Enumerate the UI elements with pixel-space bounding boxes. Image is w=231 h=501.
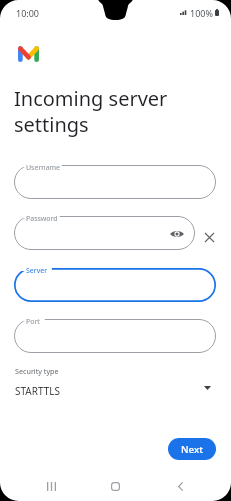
button[interactable]: Recent apps — [41, 476, 62, 497]
staticText: 100% — [190, 7, 213, 19]
button[interactable]: Clear text — [201, 229, 217, 245]
button[interactable]: Server — [14, 268, 216, 302]
staticText: 10:00 — [16, 7, 40, 19]
staticText: Server — [26, 266, 48, 276]
button[interactable]: Security type — [0, 362, 231, 402]
button[interactable]: Home — [105, 476, 126, 497]
button[interactable]: Username — [14, 165, 216, 199]
staticText: Username — [26, 163, 61, 173]
staticText: Incoming server settings — [14, 85, 168, 138]
staticText: Next — [181, 443, 203, 456]
staticText: Security type — [15, 366, 59, 376]
button[interactable]: Port — [14, 319, 216, 353]
button[interactable]: Show password — [168, 225, 185, 242]
button[interactable]: Back — [170, 476, 191, 497]
button[interactable]: Password — [14, 216, 195, 250]
staticText: STARTTLS — [15, 384, 61, 398]
button[interactable]: Next — [168, 438, 216, 460]
staticText: Password — [26, 214, 58, 224]
staticText: Port — [26, 317, 40, 327]
